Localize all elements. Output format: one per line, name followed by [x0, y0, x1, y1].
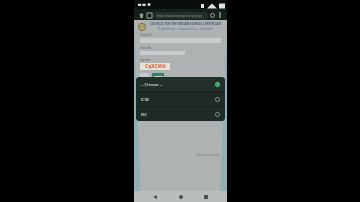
button[interactable]: SUBMIT — [152, 73, 164, 77]
staticText: results.cisce.org — [196, 153, 219, 157]
staticText: Captcha — [140, 58, 150, 62]
button[interactable]: Home — [176, 192, 186, 202]
button[interactable]: Recent apps — [201, 192, 211, 202]
staticText: ICSE — [141, 97, 150, 102]
button[interactable]: http://www.example.org/page — [153, 12, 208, 19]
button[interactable]: ICSE — [136, 92, 225, 106]
button[interactable]: Back — [150, 192, 160, 202]
button[interactable]: Reload — [208, 11, 216, 19]
staticText: CqXCWd — [145, 63, 166, 70]
button[interactable]: ISC — [136, 107, 225, 121]
staticText: Unique ID — [140, 33, 153, 37]
staticText: Index No. — [140, 46, 152, 50]
staticText: Pragati House — www.cisce.org — New Delh… — [158, 27, 213, 31]
staticText: http://www.example.org/page — [157, 14, 203, 18]
button[interactable]: Home — [137, 11, 145, 19]
button[interactable]: More options — [216, 11, 224, 19]
staticText: ISC — [141, 112, 148, 117]
button[interactable]: -- Choose -- — [136, 77, 225, 91]
button[interactable]: Tabs — [145, 11, 153, 19]
staticText: SUBMIT — [154, 74, 163, 77]
staticText: COUNCIL FOR THE INDIAN SCHOOL CERTIFICAT… — [150, 22, 222, 26]
staticText: -- Choose -- — [141, 82, 163, 87]
